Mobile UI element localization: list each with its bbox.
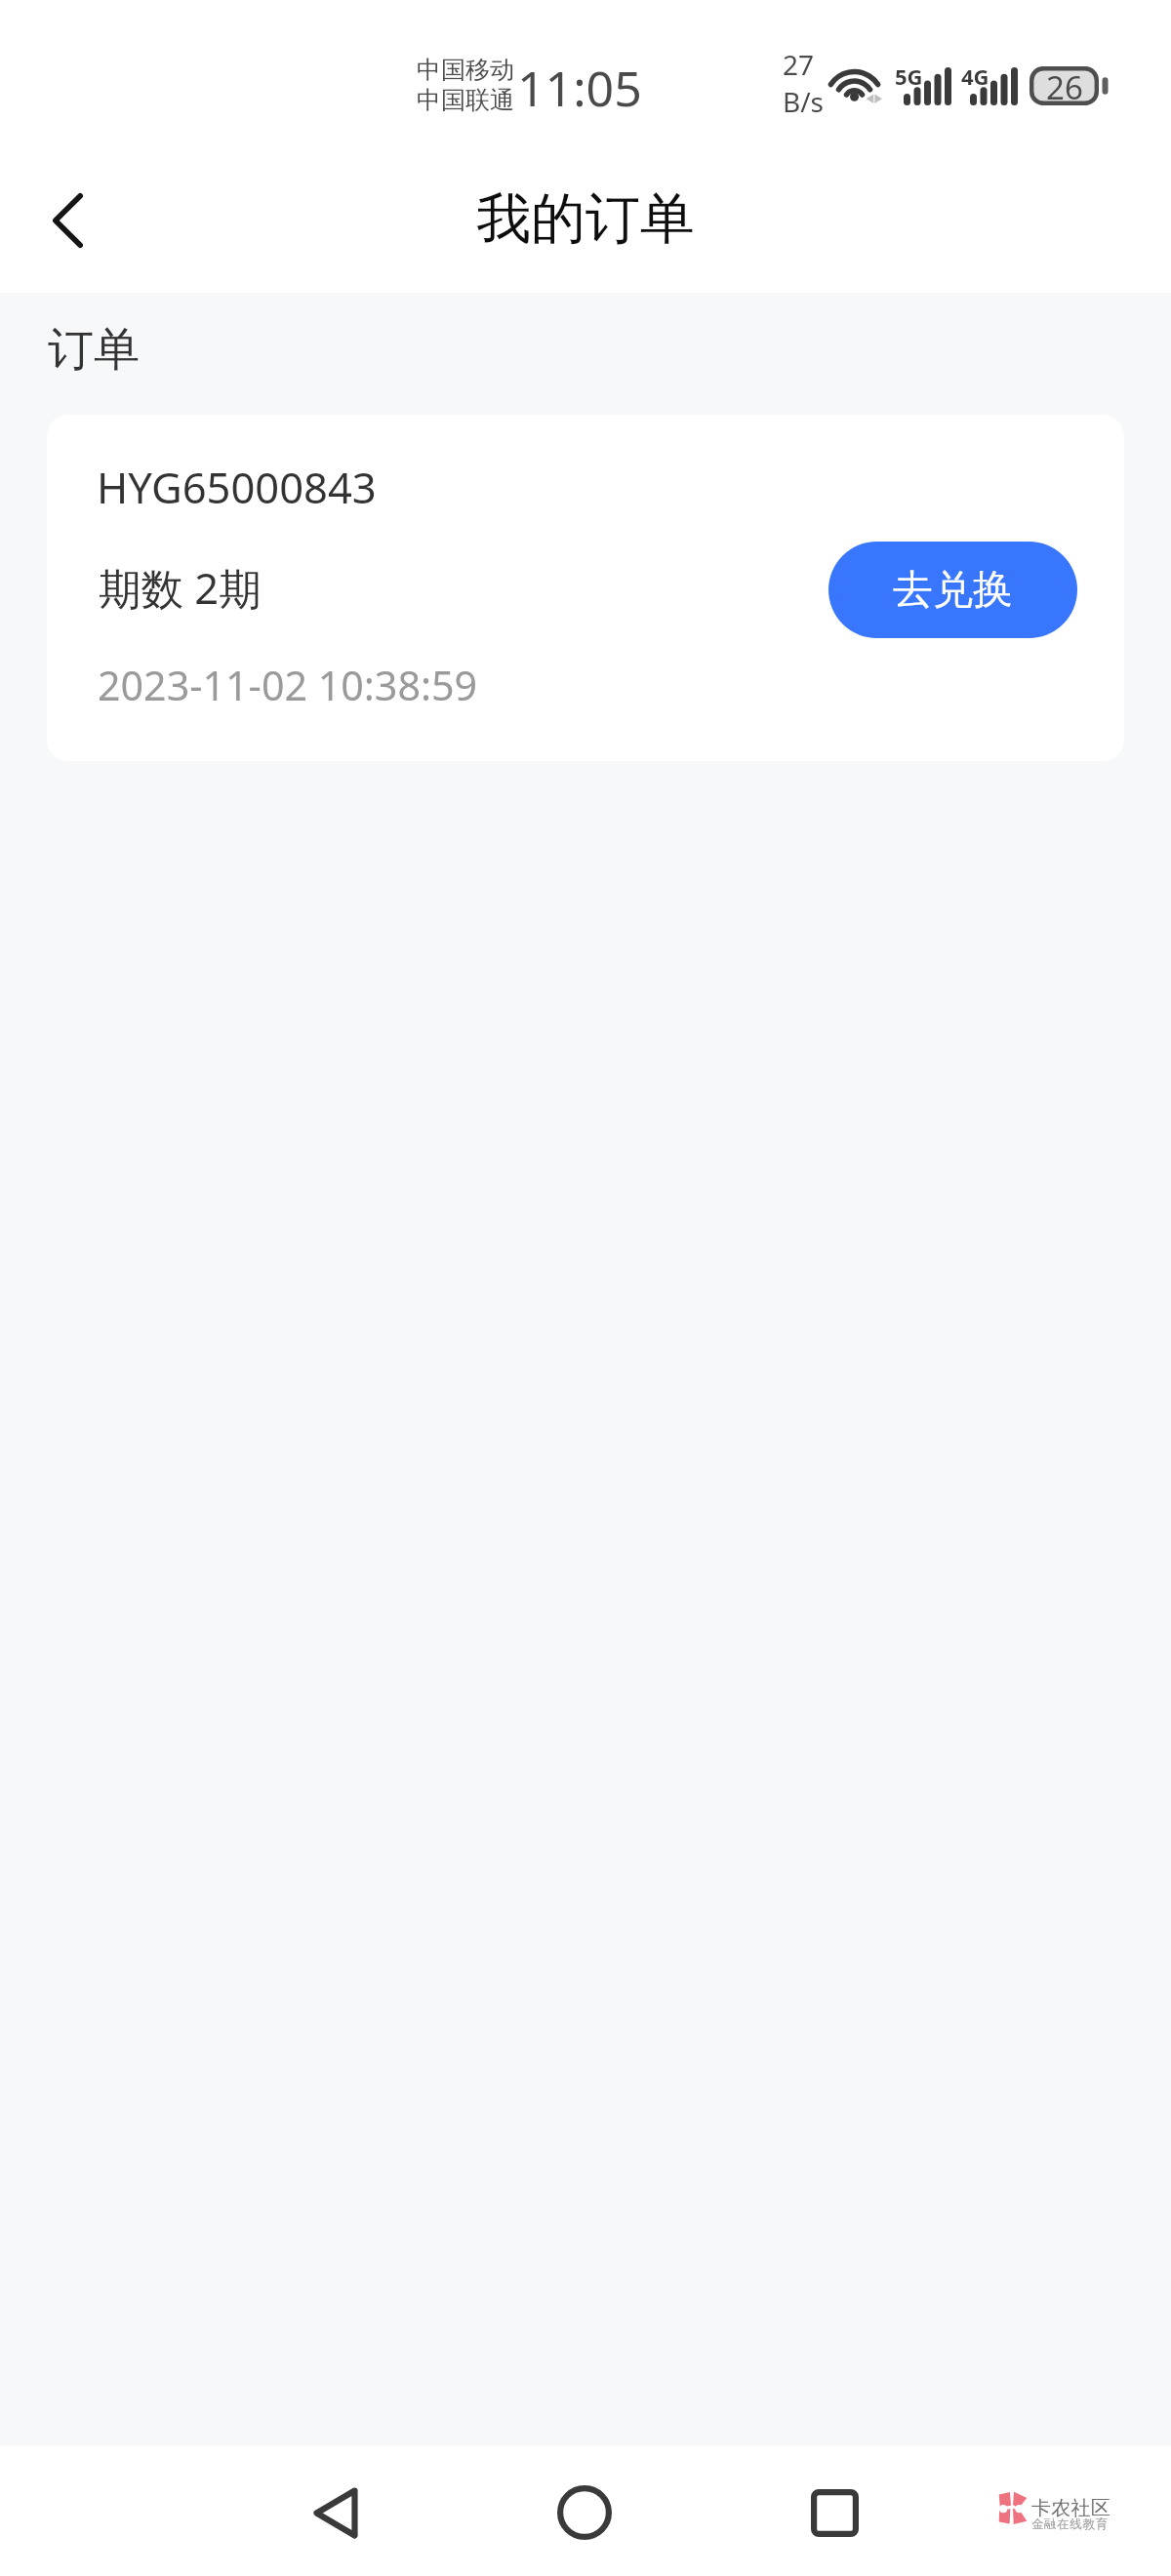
- button[interactable]: Recents: [781, 2459, 888, 2566]
- staticText: 卡农社区: [1031, 2496, 1111, 2520]
- staticText: 5G: [895, 61, 923, 91]
- staticText: 26: [1046, 65, 1083, 104]
- staticText: B/s: [783, 83, 825, 120]
- staticText: 去兑换: [893, 565, 1013, 616]
- staticText: 4G: [961, 61, 989, 91]
- staticText: 我的订单: [0, 184, 1171, 254]
- staticText: HYG65000843: [97, 458, 377, 515]
- staticText: 期数 2期: [99, 558, 262, 616]
- button[interactable]: Back: [282, 2459, 389, 2566]
- button[interactable]: HYG65000843: [47, 415, 1124, 761]
- staticText: 订单: [48, 321, 140, 379]
- staticText: 11:05: [517, 55, 642, 121]
- staticText: 27: [783, 46, 815, 83]
- button[interactable]: Home: [531, 2459, 638, 2566]
- staticText: 中国移动: [417, 55, 514, 85]
- button[interactable]: Back: [25, 179, 109, 262]
- staticText: 金融在线教育: [1031, 2516, 1109, 2532]
- staticText: 2023-11-02 10:38:59: [98, 658, 478, 712]
- staticText: 中国联通: [417, 85, 514, 115]
- button[interactable]: 去兑换: [828, 542, 1077, 638]
